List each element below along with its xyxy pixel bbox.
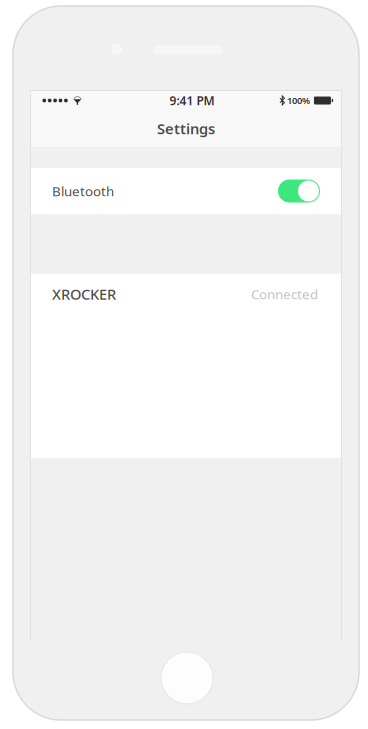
staticText: Settings bbox=[157, 119, 215, 138]
staticText: 9:41 PM bbox=[170, 92, 215, 108]
staticText: 100% bbox=[287, 94, 310, 107]
staticText: Bluetooth bbox=[52, 182, 114, 200]
button[interactable]: XROCKER bbox=[31, 274, 341, 314]
staticText: Connected bbox=[251, 285, 318, 303]
button[interactable]: Home bbox=[161, 652, 213, 704]
button[interactable]: Bluetooth bbox=[31, 168, 341, 214]
staticText: XROCKER bbox=[52, 284, 116, 304]
